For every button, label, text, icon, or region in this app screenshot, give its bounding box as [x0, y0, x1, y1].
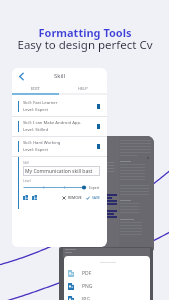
staticText: PNG	[82, 283, 93, 290]
button[interactable]: EDIT	[12, 84, 59, 93]
button[interactable]: PDF	[68, 267, 150, 280]
button[interactable]: REMOVE	[62, 195, 82, 200]
staticText: JPG	[82, 296, 91, 300]
staticText: Skill: Fast Learner	[23, 100, 58, 106]
staticText: SAVE	[92, 195, 100, 200]
staticText: EDIT	[31, 86, 40, 91]
staticText: Expert	[89, 185, 100, 190]
staticText: Level: Expert	[23, 107, 48, 113]
button[interactable]: PNG	[68, 280, 150, 293]
button[interactable]: Back	[17, 72, 26, 81]
staticText: Level: Expert	[23, 147, 48, 153]
staticText: Skill: I can Make Android App.	[23, 120, 82, 126]
button[interactable]: Format text	[23, 195, 28, 200]
staticText: Level	[23, 179, 31, 183]
button[interactable]: JPG	[68, 293, 150, 300]
staticText: REMOVE	[68, 195, 82, 200]
staticText: Skill	[26, 72, 93, 80]
button[interactable]: Skill: Fast Learner	[12, 97, 107, 116]
button[interactable]: SAVE	[86, 195, 100, 200]
staticText: Skill	[23, 161, 29, 165]
staticText: Level: Skilled	[23, 127, 48, 133]
button[interactable]: Format text	[32, 195, 37, 200]
button[interactable]: Skill: I can Make Android App.	[12, 117, 107, 136]
staticText: My Communication skill bast	[25, 168, 93, 175]
button[interactable]: HELP	[59, 84, 107, 93]
button[interactable]: Skill: Hard Working	[12, 137, 107, 156]
staticText: Easy to design perfect Cv	[17, 37, 153, 53]
staticText: HELP	[78, 86, 88, 91]
staticText: Formatting Tools	[38, 25, 132, 40]
staticText: PDF	[82, 270, 92, 277]
staticText: Skill: Hard Working	[23, 140, 61, 146]
